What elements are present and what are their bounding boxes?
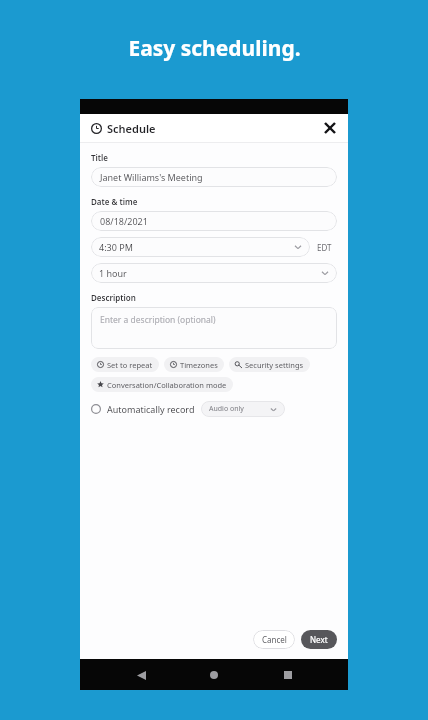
staticText: Set to repeat	[107, 360, 153, 370]
staticText: Description	[91, 292, 136, 303]
button[interactable]: Home	[201, 662, 227, 688]
staticText: Next	[310, 634, 328, 645]
button[interactable]: Recents	[275, 662, 301, 688]
button[interactable]: Back	[128, 662, 154, 688]
button[interactable]: Enter a description (optional)	[91, 307, 337, 349]
staticText: Janet Williams's Meeting	[100, 171, 203, 183]
staticText: Title	[91, 152, 109, 163]
button[interactable]: Cancel	[253, 630, 295, 649]
button[interactable]: Timezones	[164, 357, 224, 372]
button[interactable]: Next	[301, 630, 337, 649]
button[interactable]: Janet Williams's Meeting	[91, 167, 337, 187]
button[interactable]: Security settings	[229, 357, 310, 372]
staticText: Date & time	[91, 196, 138, 207]
staticText: EDT	[317, 242, 332, 253]
button[interactable]: Audio only	[201, 401, 285, 417]
staticText: Security settings	[245, 360, 304, 370]
staticText: Timezones	[180, 360, 218, 370]
staticText: Cancel	[262, 634, 287, 645]
staticText: 1 hour	[99, 267, 127, 279]
button[interactable]: Automatically record	[91, 401, 285, 417]
button[interactable]: 08/18/2021	[91, 211, 337, 231]
staticText: 4:30 PM	[99, 241, 133, 253]
staticText: Enter a description (optional)	[100, 314, 216, 326]
staticText: Audio only	[209, 404, 244, 414]
button[interactable]: 1 hour	[91, 263, 337, 283]
button[interactable]: 4:30 PM	[91, 237, 310, 257]
staticText: Easy scheduling.	[128, 34, 301, 63]
staticText: 08/18/2021	[100, 215, 148, 227]
button[interactable]: Conversation/Collaboration mode	[91, 377, 233, 392]
button[interactable]: Close	[320, 118, 340, 138]
staticText: Automatically record	[107, 403, 195, 415]
staticText: Schedule	[107, 121, 156, 136]
staticText: Conversation/Collaboration mode	[107, 380, 227, 390]
button[interactable]: Set to repeat	[91, 357, 159, 372]
